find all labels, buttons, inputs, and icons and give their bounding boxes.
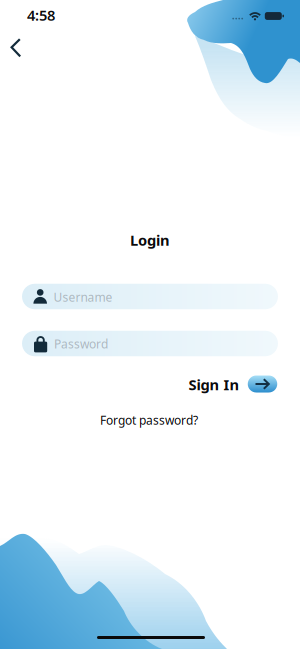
staticText: Password bbox=[54, 336, 108, 352]
staticText: Login bbox=[130, 230, 170, 250]
button[interactable]: Forgot password? bbox=[100, 412, 198, 428]
staticText: Forgot password? bbox=[100, 412, 198, 428]
button[interactable]: Password bbox=[22, 331, 278, 356]
button[interactable]: Back bbox=[3, 35, 29, 61]
staticText: Sign In bbox=[188, 375, 239, 394]
button[interactable]: Sign In bbox=[248, 375, 277, 392]
button[interactable]: Username bbox=[22, 284, 278, 309]
staticText: 4:58 bbox=[27, 5, 55, 25]
staticText: Username bbox=[53, 289, 112, 305]
button[interactable]: Sign In bbox=[188, 375, 239, 394]
